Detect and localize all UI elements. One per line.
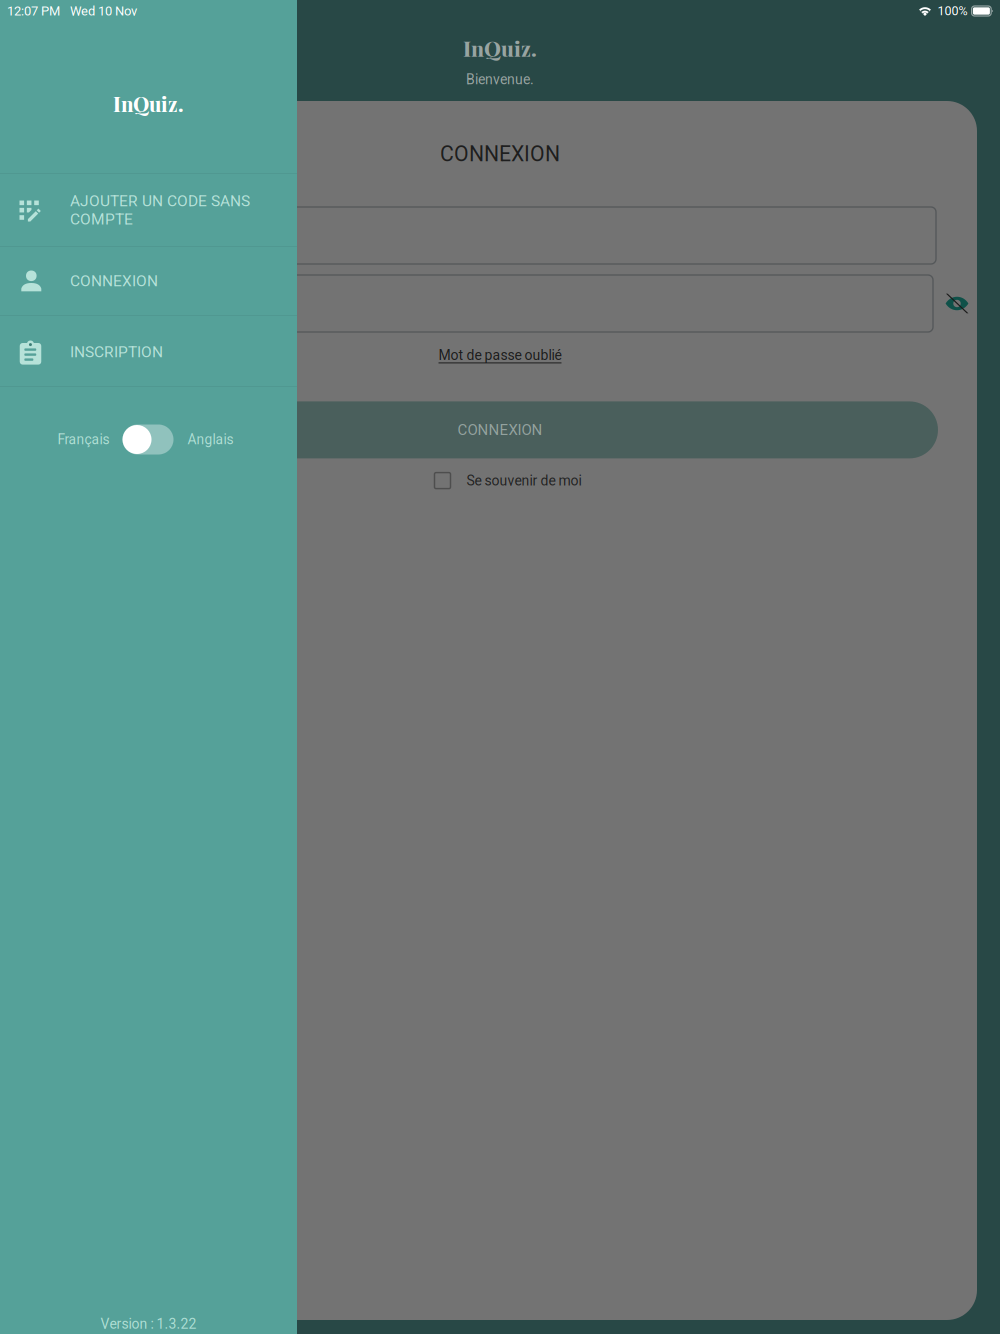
staticText: Bienvenue. — [466, 71, 534, 88]
staticText: Se souvenir de moi — [466, 472, 581, 489]
button[interactable]: CONNEXION — [0, 247, 297, 315]
button[interactable]: INSCRIPTION — [0, 316, 297, 386]
staticText: INSCRIPTION — [70, 343, 163, 361]
staticText: InQuiz. — [113, 90, 184, 117]
button[interactable]: Se souvenir de moi — [426, 464, 573, 497]
button[interactable]: CONNEXION — [62, 401, 938, 458]
button[interactable]: AJOUTER UN CODE SANS COMPTE — [0, 174, 297, 246]
staticText: Wed 10 Nov — [70, 3, 137, 19]
button[interactable]: Français — [0, 387, 297, 492]
staticText: 100% — [938, 4, 968, 18]
staticText: Anglais — [187, 431, 233, 448]
staticText: Mot de passe oublié — [438, 347, 561, 363]
staticText: InQuiz. — [463, 34, 537, 62]
staticText: Version : 1.3.22 — [100, 1316, 196, 1332]
button[interactable]: Mot de passe oublié — [438, 332, 561, 367]
button[interactable]: Afficher le mot de passe — [936, 282, 978, 324]
staticText: CONNEXION — [440, 142, 560, 166]
staticText: 12:07 PM — [7, 3, 60, 19]
staticText: CONNEXION — [457, 421, 542, 439]
staticText: AJOUTER UN CODE SANS COMPTE — [70, 192, 250, 228]
staticText: CONNEXION — [70, 272, 158, 290]
staticText: Français — [57, 431, 109, 448]
